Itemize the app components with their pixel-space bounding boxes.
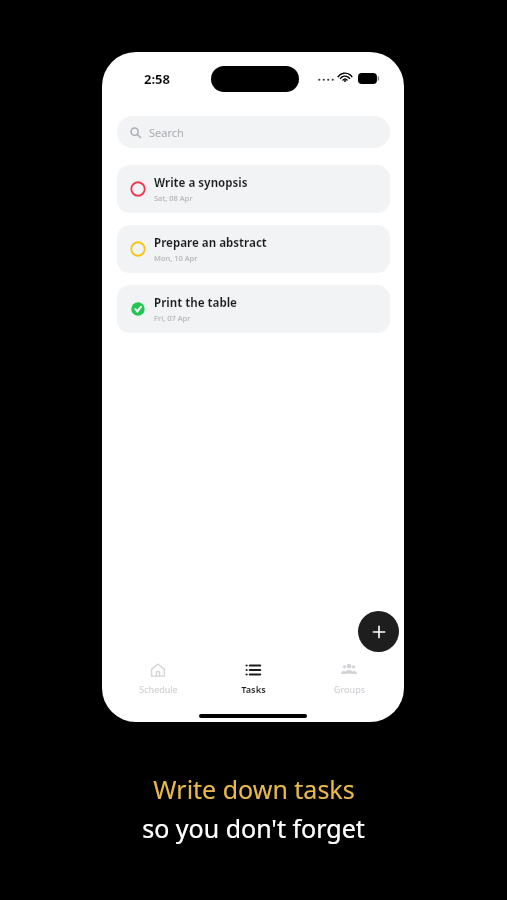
staticText: Search [149,125,184,140]
staticText: Write a synopsis [154,175,248,191]
staticText: Write down tasks [153,772,355,806]
staticText: so you don't forget [142,811,365,845]
button[interactable]: Prepare an abstract [117,225,390,273]
staticText: Schedule [139,683,178,695]
staticText: Prepare an abstract [154,235,267,251]
staticText: Mon, 10 Apr [154,253,198,263]
staticText: 2:58 [144,70,170,88]
staticText: Groups [334,683,365,695]
button[interactable]: Schedule [118,656,198,695]
staticText: Sat, 08 Apr [154,193,193,203]
button[interactable]: Write a synopsis [117,165,390,213]
button[interactable]: Groups [309,656,389,695]
staticText: Print the table [154,295,237,311]
button[interactable]: Tasks [213,656,293,695]
staticText: Fri, 07 Apr [154,313,191,323]
button[interactable]: Print the table [117,285,390,333]
button[interactable]: Add task [358,611,399,652]
button[interactable]: Search [117,116,390,148]
staticText: Tasks [241,683,266,695]
